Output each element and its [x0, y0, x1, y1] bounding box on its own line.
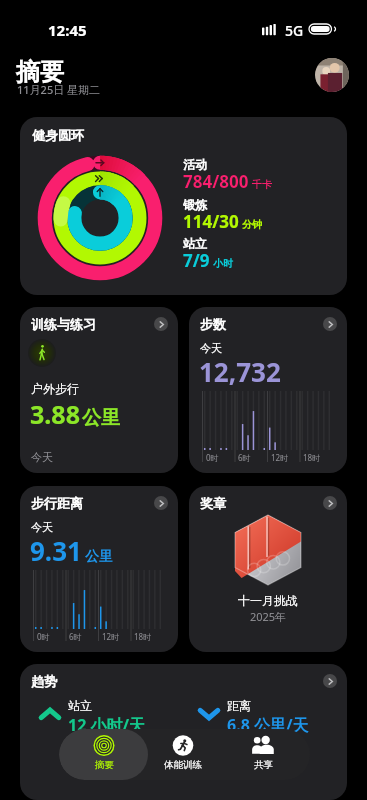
staticText: 站立	[183, 236, 207, 251]
staticText: 户外步行	[31, 381, 79, 396]
button[interactable]: Open details	[323, 317, 337, 331]
staticText: 6时	[69, 631, 82, 642]
staticText: 公里	[85, 548, 113, 566]
staticText: 奖章	[200, 495, 226, 511]
staticText: 2025年	[189, 609, 347, 624]
button[interactable]: Open details	[154, 496, 168, 510]
button[interactable]: 趋势	[20, 664, 347, 800]
staticText: 小时	[213, 257, 233, 270]
staticText: 趋势	[31, 673, 57, 689]
staticText: 公里	[82, 406, 120, 430]
staticText: 784/800	[183, 170, 249, 193]
staticText: 6.8 公里/天	[227, 714, 309, 736]
staticText: 12:45	[48, 20, 87, 40]
staticText: 体能训练	[164, 759, 202, 771]
staticText: 18时	[303, 452, 321, 463]
staticText: 12时	[271, 452, 289, 463]
staticText: 锻炼	[183, 197, 207, 212]
button[interactable]: 步数	[189, 307, 347, 473]
staticText: 步数	[200, 316, 226, 332]
staticText: 健身圆环	[32, 127, 84, 143]
staticText: 6时	[238, 452, 251, 463]
staticText: 0时	[206, 452, 219, 463]
staticText: 11月25日 星期二	[17, 82, 101, 97]
staticText: 12,732	[199, 354, 281, 389]
button[interactable]: Profile	[315, 58, 349, 92]
staticText: 今天	[31, 450, 53, 464]
staticText: 3.88	[30, 397, 80, 431]
staticText: 摘要	[95, 759, 114, 771]
staticText: 站立	[68, 698, 92, 713]
button[interactable]: 共享	[233, 729, 293, 780]
staticText: 步行距离	[31, 495, 83, 511]
staticText: 12 小时/天	[68, 714, 146, 736]
staticText: 7/9	[183, 249, 210, 272]
staticText: 分钟	[242, 218, 262, 231]
button[interactable]: 步行距离	[20, 486, 178, 652]
staticText: 距离	[227, 698, 251, 713]
staticText: 活动	[183, 157, 207, 172]
staticText: 千卡	[252, 178, 272, 191]
staticText: 0时	[37, 631, 50, 642]
staticText: 9.31	[30, 533, 82, 568]
button[interactable]: 训练与练习	[20, 307, 178, 473]
staticText: 摘要	[16, 57, 64, 87]
staticText: 十一月挑战	[189, 593, 347, 608]
staticText: 12时	[102, 631, 120, 642]
staticText: 今天	[31, 520, 53, 534]
button[interactable]: 奖章	[189, 486, 347, 652]
button[interactable]: 摘要	[74, 729, 134, 780]
staticText: 共享	[254, 759, 273, 771]
staticText: 18时	[134, 631, 152, 642]
button[interactable]: Open details	[323, 674, 337, 688]
button[interactable]: Open details	[323, 496, 337, 510]
staticText: 114/30	[183, 210, 239, 233]
staticText: 今天	[200, 341, 222, 355]
button[interactable]: Open details	[154, 317, 168, 331]
button[interactable]: 健身圆环	[20, 117, 347, 295]
staticText: 训练与练习	[31, 316, 96, 332]
button[interactable]: 体能训练	[153, 729, 213, 780]
staticText: 5G	[285, 21, 304, 40]
